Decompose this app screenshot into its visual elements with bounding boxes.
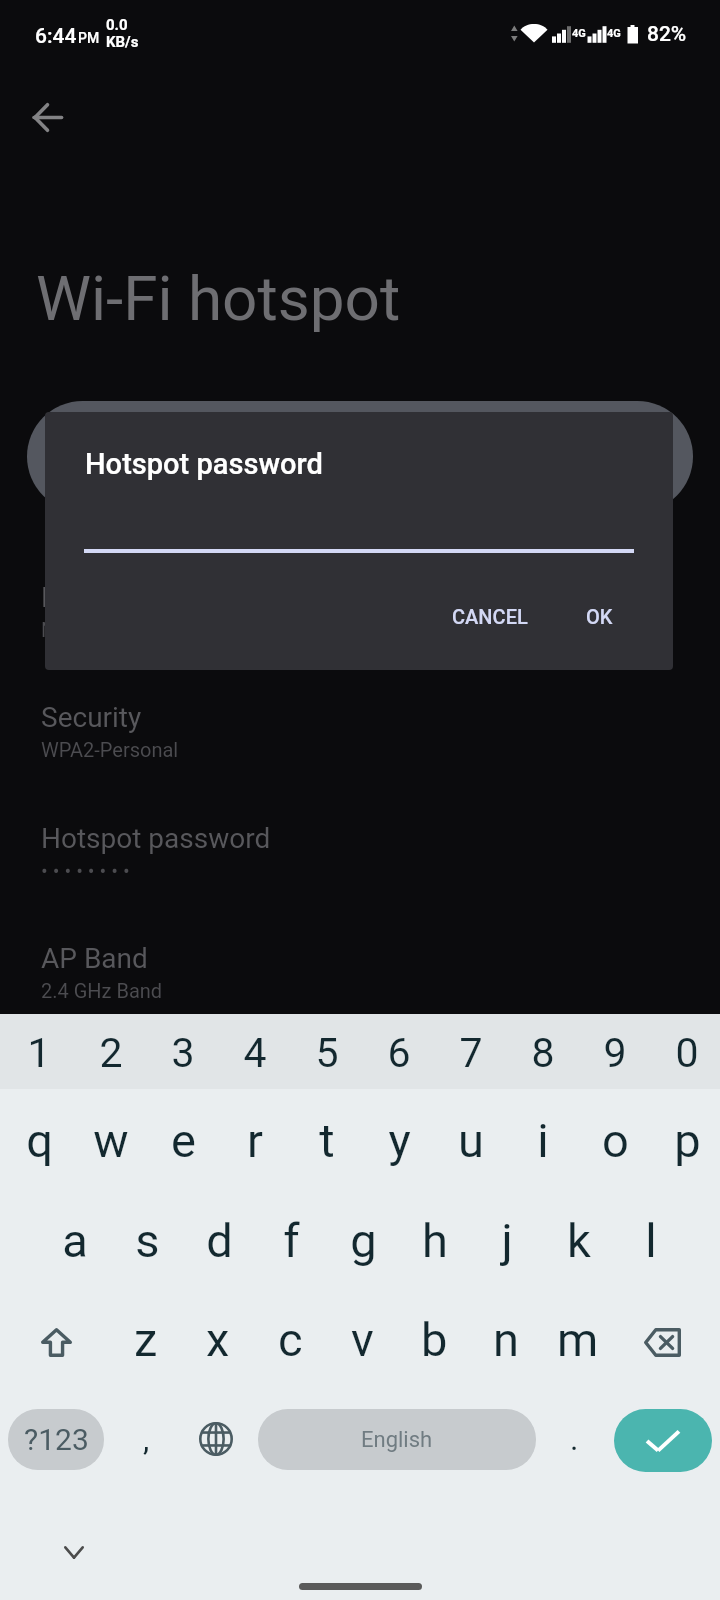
button[interactable]: j (471, 1189, 543, 1292)
button[interactable]: d (183, 1189, 255, 1292)
button[interactable]: . (544, 1389, 604, 1489)
button[interactable]: , (116, 1389, 176, 1489)
button[interactable]: CANCEL (428, 587, 548, 653)
staticText: b (421, 1312, 448, 1367)
button[interactable]: Shift (20, 1289, 92, 1389)
staticText: Hotspot password (85, 447, 323, 481)
button[interactable]: Security (0, 679, 720, 799)
staticText: ?123 (24, 1422, 89, 1457)
button[interactable]: l (615, 1189, 687, 1292)
staticText: 0.0 (106, 16, 128, 34)
button[interactable]: Hide keyboard (44, 1522, 104, 1582)
button[interactable]: g (327, 1189, 399, 1292)
staticText: x (206, 1312, 230, 1367)
button[interactable]: English (258, 1409, 536, 1470)
button[interactable]: h (399, 1189, 471, 1292)
button[interactable]: t (291, 1089, 363, 1192)
staticText: c (278, 1312, 303, 1367)
button[interactable]: 6 (363, 1014, 435, 1092)
button[interactable]: w (75, 1089, 147, 1192)
button[interactable]: v (326, 1289, 398, 1389)
staticText: s (135, 1213, 160, 1268)
staticText: z (134, 1312, 158, 1367)
button[interactable]: 3 (147, 1014, 219, 1092)
staticText: 2 (99, 1029, 123, 1077)
staticText: t (319, 1113, 335, 1168)
staticText: 5 (315, 1029, 339, 1077)
button[interactable]: x (182, 1289, 254, 1389)
staticText: • • • • • • • • (41, 859, 130, 882)
button[interactable]: r (219, 1089, 291, 1192)
button[interactable]: y (363, 1089, 435, 1192)
button[interactable]: ?123 (8, 1409, 104, 1470)
staticText: v (351, 1312, 374, 1367)
staticText: 6 (387, 1029, 411, 1077)
button[interactable]: Hotspot name (0, 559, 720, 679)
staticText: PM (78, 30, 100, 46)
button[interactable]: m (542, 1289, 614, 1389)
staticText: g (350, 1213, 377, 1268)
staticText: k (567, 1213, 591, 1268)
button[interactable]: f (255, 1189, 327, 1292)
staticText: 4G (572, 27, 586, 40)
button[interactable]: Backspace (626, 1289, 698, 1389)
button[interactable]: 9 (579, 1014, 651, 1092)
staticText: h (422, 1213, 448, 1268)
staticText: English (361, 1427, 433, 1453)
staticText: o (602, 1113, 629, 1168)
button[interactable]: p (651, 1089, 720, 1192)
button[interactable]: c (254, 1289, 326, 1389)
staticText: 0 (675, 1029, 699, 1077)
staticText: Security (41, 701, 142, 734)
staticText: a (62, 1213, 88, 1268)
button[interactable]: AP Band (0, 920, 720, 1040)
button[interactable]: u (435, 1089, 507, 1192)
staticText: . (570, 1420, 579, 1458)
staticText: AP Band (41, 942, 148, 975)
staticText: l (645, 1213, 657, 1268)
staticText: 82% (647, 22, 687, 47)
staticText: 2.4 GHz Band (41, 979, 163, 1002)
button[interactable]: o (579, 1089, 651, 1192)
staticText: 4G (607, 27, 621, 40)
button[interactable]: 5 (291, 1014, 363, 1092)
staticText: d (206, 1213, 233, 1268)
staticText: 7 (459, 1029, 483, 1077)
button[interactable]: 8 (507, 1014, 579, 1092)
button[interactable]: s (111, 1189, 183, 1292)
button[interactable]: Back (14, 86, 80, 150)
staticText: OK (586, 605, 613, 628)
staticText: 9 (603, 1029, 627, 1077)
staticText: WPA2-Personal (41, 738, 179, 761)
button[interactable]: 7 (435, 1014, 507, 1092)
button[interactable]: 1 (3, 1014, 75, 1092)
staticText: Hotspot name (41, 581, 219, 614)
staticText: m (557, 1312, 599, 1367)
staticText: 4 (243, 1029, 267, 1077)
button[interactable]: 2 (75, 1014, 147, 1092)
staticText: w (93, 1113, 129, 1168)
button[interactable]: z (110, 1289, 182, 1389)
button[interactable]: b (398, 1289, 470, 1389)
staticText: Not set (41, 618, 106, 641)
button[interactable]: 4 (219, 1014, 291, 1092)
staticText: i (537, 1113, 549, 1168)
staticText: 8 (531, 1029, 555, 1077)
staticText: , (143, 1420, 150, 1458)
staticText: Hotspot password (41, 822, 271, 855)
staticText: u (458, 1113, 484, 1168)
button[interactable]: a (39, 1189, 111, 1292)
button[interactable]: Change language (186, 1389, 246, 1489)
button[interactable]: q (3, 1089, 75, 1192)
staticText: n (493, 1312, 519, 1367)
button[interactable]: Enter (614, 1409, 712, 1472)
button[interactable]: OK (556, 587, 640, 653)
button[interactable]: e (147, 1089, 219, 1192)
button[interactable]: n (470, 1289, 542, 1389)
button[interactable]: i (507, 1089, 579, 1192)
staticText: 1 (27, 1029, 51, 1077)
button[interactable]: k (543, 1189, 615, 1292)
button[interactable]: Hotspot password (0, 800, 720, 920)
staticText: f (283, 1213, 300, 1268)
button[interactable]: 0 (651, 1014, 720, 1092)
